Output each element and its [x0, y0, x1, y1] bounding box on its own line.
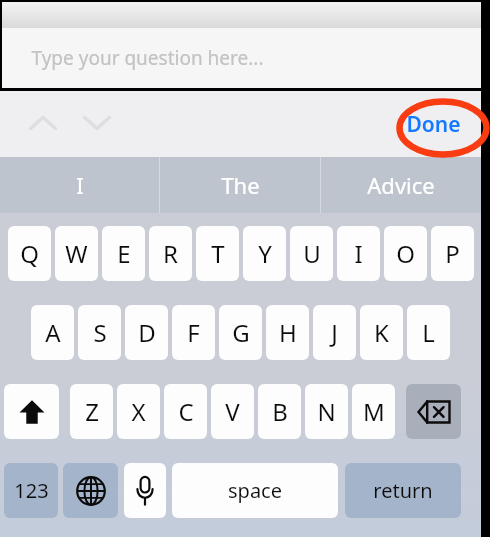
button[interactable]: Q [8, 226, 51, 281]
button[interactable]: V [211, 384, 254, 439]
button[interactable]: space [172, 463, 338, 518]
staticText: S [93, 316, 107, 349]
staticText: P [445, 237, 460, 270]
staticText: The [221, 170, 260, 200]
button[interactable]: L [407, 305, 450, 360]
button[interactable]: The [160, 157, 320, 213]
button[interactable]: U [290, 226, 333, 281]
button[interactable]: Y [243, 226, 286, 281]
button[interactable]: W [55, 226, 98, 281]
button[interactable]: H [266, 305, 309, 360]
staticText: C [178, 395, 194, 428]
staticText: J [331, 316, 338, 349]
staticText: Z [85, 395, 99, 428]
button[interactable]: I [337, 226, 380, 281]
staticText: 123 [14, 477, 49, 504]
button[interactable]: 123 [4, 463, 58, 518]
staticText: O [396, 237, 415, 270]
staticText: Q [20, 237, 39, 270]
staticText: I [354, 237, 363, 270]
button[interactable]: R [149, 226, 192, 281]
button[interactable]: E [102, 226, 145, 281]
button[interactable]: S [78, 305, 121, 360]
button[interactable]: I [0, 157, 159, 213]
button[interactable]: return [345, 463, 461, 518]
staticText: E [117, 237, 131, 270]
button[interactable]: T [196, 226, 239, 281]
button[interactable]: Z [70, 384, 113, 439]
button[interactable]: Advice [321, 157, 481, 213]
staticText: L [422, 316, 435, 349]
staticText: D [138, 316, 156, 349]
button[interactable]: P [431, 226, 474, 281]
staticText: X [131, 395, 146, 428]
button[interactable]: J [313, 305, 356, 360]
staticText: I [76, 170, 84, 200]
staticText: W [65, 237, 88, 270]
staticText: space [228, 477, 282, 504]
button[interactable]: N [305, 384, 348, 439]
button[interactable]: K [360, 305, 403, 360]
staticText: T [211, 237, 225, 270]
button[interactable]: B [258, 384, 301, 439]
staticText: R [163, 237, 178, 270]
button[interactable]: Backspace [406, 384, 461, 439]
staticText: Done [406, 110, 461, 139]
button[interactable]: Previous [20, 101, 66, 145]
staticText: V [225, 395, 240, 428]
button[interactable]: F [172, 305, 215, 360]
button[interactable]: O [384, 226, 427, 281]
staticText: Advice [367, 170, 435, 200]
staticText: B [272, 395, 288, 428]
staticText: N [317, 395, 336, 428]
button[interactable]: D [125, 305, 168, 360]
staticText: A [45, 316, 61, 349]
button[interactable]: Dictate [124, 463, 166, 518]
staticText: U [303, 237, 321, 270]
staticText: return [373, 477, 433, 504]
staticText: H [279, 316, 297, 349]
staticText: Y [258, 237, 272, 270]
button[interactable]: X [117, 384, 160, 439]
staticText: F [187, 316, 200, 349]
staticText: Type your question here... [31, 45, 264, 71]
button[interactable]: G [219, 305, 262, 360]
button[interactable]: Shift [4, 384, 59, 439]
button[interactable]: A [31, 305, 74, 360]
button[interactable]: C [164, 384, 207, 439]
staticText: G [232, 316, 250, 349]
button[interactable]: Type your question here... [2, 28, 481, 88]
staticText: K [374, 316, 389, 349]
button[interactable]: Change keyboard language [63, 463, 118, 518]
button[interactable]: Done [393, 101, 473, 147]
button[interactable]: M [352, 384, 395, 439]
button[interactable]: Next [74, 101, 120, 145]
staticText: M [363, 395, 385, 428]
